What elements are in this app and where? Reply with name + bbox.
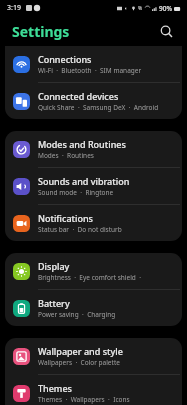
button[interactable]: Sounds and vibration [5, 168, 182, 205]
staticText: Wallpaper and style [38, 345, 123, 357]
button[interactable]: Notifications [5, 205, 182, 241]
button[interactable]: Modes and Routines [5, 131, 182, 168]
staticText: Sounds and vibration [38, 175, 130, 187]
staticText: Display [38, 260, 70, 272]
staticText: % [138, 5, 143, 12]
staticText: Themes [38, 382, 72, 394]
button[interactable]: Search [155, 20, 177, 42]
button[interactable]: Themes [5, 375, 182, 405]
staticText: 3:19 [7, 3, 21, 13]
staticText: Connected devices [38, 90, 119, 102]
staticText: Themes · Wallpapers · Icons [38, 395, 130, 404]
staticText: Battery [38, 297, 70, 309]
staticText: Notifications [38, 212, 93, 224]
button[interactable]: Battery [5, 290, 182, 326]
staticText: Modes and Routines [38, 138, 126, 150]
staticText: Quick Share · Samsung DeX · Android Auto [38, 103, 174, 112]
staticText: Wi-Fi · Bluetooth · SIM manager [38, 66, 142, 75]
staticText: Brightness · Eye comfort shield · Naviga… [38, 273, 174, 282]
button[interactable]: Wallpaper and style [5, 338, 182, 375]
button[interactable]: Display [5, 253, 182, 290]
staticText: Modes · Routines [38, 151, 94, 160]
staticText: Wallpapers · Color palette [38, 358, 120, 367]
button[interactable]: Connected devices [5, 83, 182, 119]
staticText: Connections [38, 53, 92, 65]
button[interactable]: Connections [5, 46, 182, 83]
staticText: Sound mode · Ringtone [38, 188, 114, 197]
staticText: Status bar · Do not disturb [38, 225, 122, 234]
staticText: 90% [159, 4, 172, 13]
staticText: Settings [12, 22, 70, 41]
staticText: Power saving · Charging [38, 310, 116, 319]
